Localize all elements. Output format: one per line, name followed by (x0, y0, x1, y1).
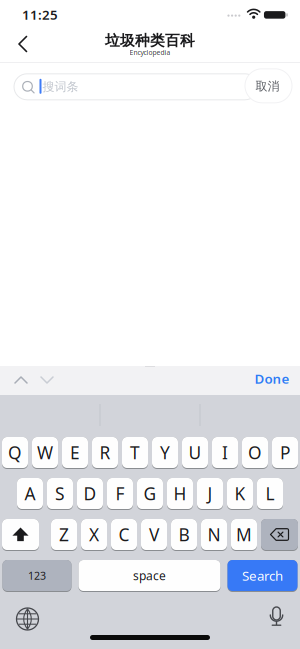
staticText: G (143, 482, 156, 505)
staticText: T (130, 441, 140, 464)
staticText: 123 (28, 568, 46, 583)
button[interactable]: U (182, 437, 208, 469)
staticText: E (70, 441, 80, 464)
button[interactable]: B (171, 519, 197, 551)
staticText: J (207, 482, 212, 505)
button[interactable]: P (272, 437, 298, 469)
staticText: H (173, 482, 186, 505)
button[interactable]: F (107, 478, 133, 510)
button[interactable]: R (92, 437, 118, 469)
staticText: Search (242, 567, 283, 584)
button[interactable]: 搜词条 (14, 74, 258, 100)
staticText: 11:25 (22, 6, 58, 23)
staticText: Q (8, 441, 22, 464)
staticText: 取消 (255, 79, 279, 94)
button[interactable]: Next field (39, 375, 55, 385)
button[interactable]: Z (51, 519, 77, 551)
button[interactable]: V (141, 519, 167, 551)
staticText: space (133, 567, 166, 583)
button[interactable]: A (17, 478, 43, 510)
button[interactable]: E (62, 437, 88, 469)
button[interactable]: Numbers (2, 560, 71, 592)
button[interactable]: S (47, 478, 73, 510)
staticText: D (83, 482, 96, 505)
staticText: C (118, 523, 129, 546)
staticText: X (89, 523, 99, 546)
button[interactable]: Done (254, 370, 289, 387)
staticText: M (236, 523, 252, 546)
staticText: P (280, 441, 290, 464)
button[interactable]: K (227, 478, 253, 510)
staticText: W (37, 441, 53, 464)
button[interactable]: Y (152, 437, 178, 469)
button[interactable]: Next keyboard (16, 608, 38, 630)
button[interactable]: O (242, 437, 268, 469)
button[interactable]: Dictation (269, 607, 283, 631)
staticText: L (265, 482, 274, 505)
button[interactable]: Space (78, 560, 220, 592)
button[interactable]: D (77, 478, 103, 510)
button[interactable]: C (111, 519, 137, 551)
button[interactable]: 取消 (245, 69, 292, 103)
staticText: K (234, 482, 245, 505)
staticText: A (24, 482, 35, 505)
button[interactable]: L (257, 478, 283, 510)
button[interactable]: J (197, 478, 223, 510)
button[interactable]: Back (13, 32, 37, 56)
staticText: Done (254, 370, 289, 387)
button[interactable]: X (81, 519, 107, 551)
button[interactable]: Previous field (13, 375, 29, 385)
button[interactable]: Q (2, 437, 28, 469)
button[interactable]: I (212, 437, 238, 469)
button[interactable]: M (231, 519, 257, 551)
staticText: B (178, 523, 189, 546)
staticText: R (99, 441, 110, 464)
button[interactable]: T (122, 437, 148, 469)
staticText: 垃圾种类百科 (105, 31, 195, 49)
staticText: I (222, 441, 228, 464)
staticText: N (207, 523, 220, 546)
staticText: Y (160, 441, 170, 464)
button[interactable]: H (167, 478, 193, 510)
staticText: Encyclopedia (129, 48, 170, 57)
staticText: V (149, 523, 159, 546)
staticText: Z (59, 523, 69, 546)
button[interactable]: Shift (2, 519, 39, 551)
staticText: 搜词条 (42, 79, 78, 94)
button[interactable]: Delete (261, 519, 298, 551)
staticText: S (55, 482, 65, 505)
button[interactable]: Search (227, 560, 297, 592)
button[interactable]: G (137, 478, 163, 510)
staticText: F (115, 482, 124, 505)
staticText: U (188, 441, 201, 464)
staticText: O (248, 441, 262, 464)
button[interactable]: N (201, 519, 227, 551)
button[interactable]: W (32, 437, 58, 469)
